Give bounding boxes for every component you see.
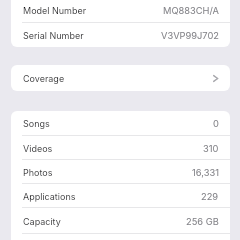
staticText: Model Number bbox=[23, 5, 87, 16]
staticText: V3VP99J702 bbox=[161, 30, 219, 41]
staticText: Applications bbox=[23, 191, 76, 202]
staticText: Serial Number bbox=[23, 30, 84, 41]
button[interactable]: Applications bbox=[11, 184, 230, 208]
staticText: Videos bbox=[23, 143, 53, 154]
staticText: Photos bbox=[23, 167, 53, 178]
button[interactable]: Photos bbox=[11, 160, 230, 184]
button[interactable]: Model Number bbox=[11, 0, 230, 23]
staticText: MQ883CH/A bbox=[163, 5, 219, 16]
staticText: 16,331 bbox=[192, 167, 219, 178]
staticText: 229 bbox=[201, 191, 219, 202]
button[interactable]: Coverage bbox=[11, 65, 230, 91]
button[interactable]: Videos bbox=[11, 136, 230, 160]
other: Open Coverage bbox=[213, 74, 219, 83]
staticText: 310 bbox=[203, 143, 219, 154]
button[interactable]: Serial Number bbox=[11, 23, 230, 47]
button[interactable]: Capacity bbox=[11, 208, 230, 234]
staticText: Capacity bbox=[23, 216, 61, 227]
button[interactable]: Songs bbox=[11, 111, 230, 136]
staticText: 0 bbox=[213, 118, 219, 129]
staticText: Coverage bbox=[23, 73, 65, 84]
staticText: Songs bbox=[23, 118, 50, 129]
staticText: 256 GB bbox=[186, 216, 219, 227]
